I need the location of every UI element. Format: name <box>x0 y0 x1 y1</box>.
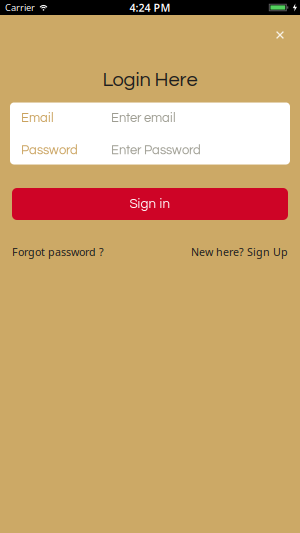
staticText: Email <box>21 111 54 125</box>
staticText: Sign in <box>129 197 170 211</box>
button[interactable]: New here? Sign Up <box>191 245 288 259</box>
button[interactable]: Sign in <box>12 188 288 220</box>
staticText: Password <box>21 144 78 157</box>
staticText: Login Here <box>102 70 197 90</box>
staticText: Carrier <box>5 1 35 14</box>
textField[interactable]: Enter Password <box>111 144 290 157</box>
staticText: Enter email <box>111 111 176 125</box>
staticText: Enter Password <box>111 144 201 157</box>
staticText: New here? Sign Up <box>191 245 288 259</box>
textField[interactable]: Enter email <box>111 111 290 125</box>
button[interactable]: Close <box>271 26 289 44</box>
staticText: 4:24 PM <box>129 0 170 15</box>
staticText: Forgot password ? <box>12 245 104 259</box>
button[interactable]: Forgot password ? <box>12 245 104 259</box>
